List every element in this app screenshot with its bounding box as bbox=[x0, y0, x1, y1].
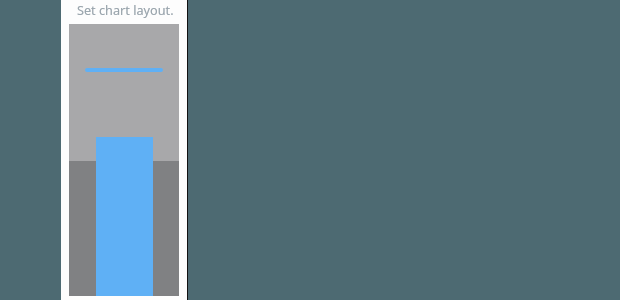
button[interactable]: Chart layout preview bbox=[69, 24, 179, 296]
button[interactable]: Set chart layout. bbox=[61, 0, 187, 300]
staticText: Set chart layout. bbox=[77, 1, 174, 18]
